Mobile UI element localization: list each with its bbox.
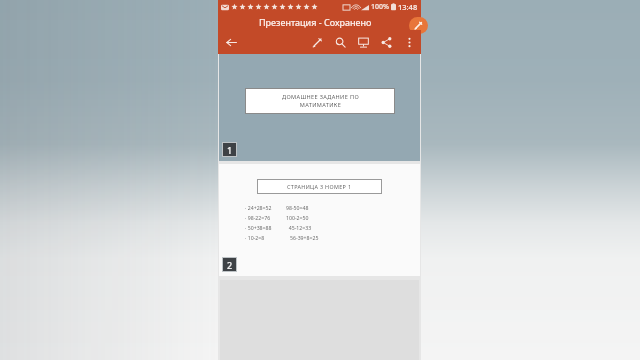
staticText: 13:48 <box>398 2 418 12</box>
staticText: · 24+28=52 <box>245 204 272 211</box>
staticText: 100-2=50 <box>286 214 309 221</box>
button[interactable]: ДОМАШНЕЕ ЗАДАНИЕ ПО МАТИМАТИКЕ <box>219 54 420 161</box>
staticText: 45-12=33 <box>286 224 312 231</box>
staticText: · 98-22=76 <box>245 214 271 221</box>
staticText: СТРАНИЦА 3 НОМЕР 1 <box>287 183 352 190</box>
button[interactable]: Share <box>377 33 395 51</box>
staticText: 56-39+8=25 <box>286 234 319 241</box>
staticText: · 10-2=8 <box>245 234 265 241</box>
staticText: · 50+38=88 <box>245 224 272 231</box>
button[interactable]: More options <box>400 33 418 51</box>
staticText: 2 <box>227 259 233 271</box>
staticText: 98-50=48 <box>286 204 309 211</box>
staticText: ДОМАШНЕЕ ЗАДАНИЕ ПО МАТИМАТИКЕ <box>282 93 359 109</box>
button[interactable]: Back <box>222 33 240 51</box>
staticText: 100% <box>371 2 389 12</box>
button[interactable]: Edit <box>409 17 428 34</box>
staticText: Презентация - Сохранено <box>259 16 372 28</box>
button[interactable]: Edit <box>308 33 326 51</box>
button[interactable]: Search <box>331 33 349 51</box>
button[interactable]: Present <box>354 33 372 51</box>
button[interactable]: СТРАНИЦА 3 НОМЕР 1 <box>219 164 420 276</box>
staticText: 1 <box>227 144 233 156</box>
